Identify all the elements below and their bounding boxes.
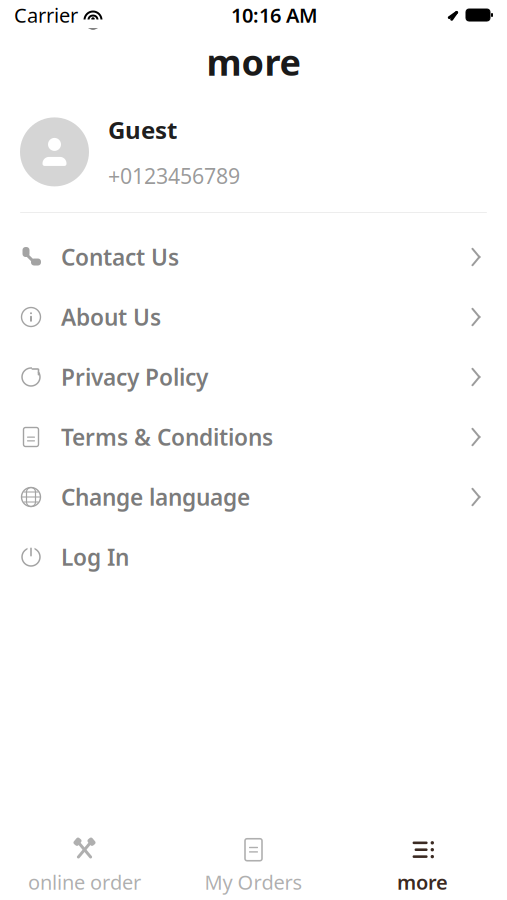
staticText: more	[397, 869, 448, 895]
button[interactable]: Contact Us	[0, 227, 507, 287]
button[interactable]: Terms & Conditions	[0, 407, 507, 467]
button[interactable]: Change language	[0, 467, 507, 527]
staticText: Terms & Conditions	[61, 422, 273, 452]
staticText: Contact Us	[61, 242, 179, 272]
button[interactable]: online order	[0, 832, 169, 900]
staticText: Log In	[61, 542, 129, 572]
staticText: Guest	[108, 114, 177, 146]
staticText: online order	[28, 869, 141, 895]
staticText: Privacy Policy	[61, 362, 208, 392]
staticText: +0123456789	[108, 162, 240, 190]
button[interactable]: My Orders	[169, 832, 338, 900]
button[interactable]: About Us	[0, 287, 507, 347]
staticText: Change language	[61, 482, 250, 512]
button[interactable]: more	[338, 832, 507, 900]
staticText: My Orders	[204, 869, 302, 895]
staticText: Carrier	[14, 2, 78, 28]
button[interactable]: Log In	[0, 527, 507, 587]
staticText: more	[206, 38, 300, 86]
staticText: 10:16 AM	[231, 2, 318, 28]
staticText: About Us	[61, 302, 161, 332]
button[interactable]: Privacy Policy	[0, 347, 507, 407]
